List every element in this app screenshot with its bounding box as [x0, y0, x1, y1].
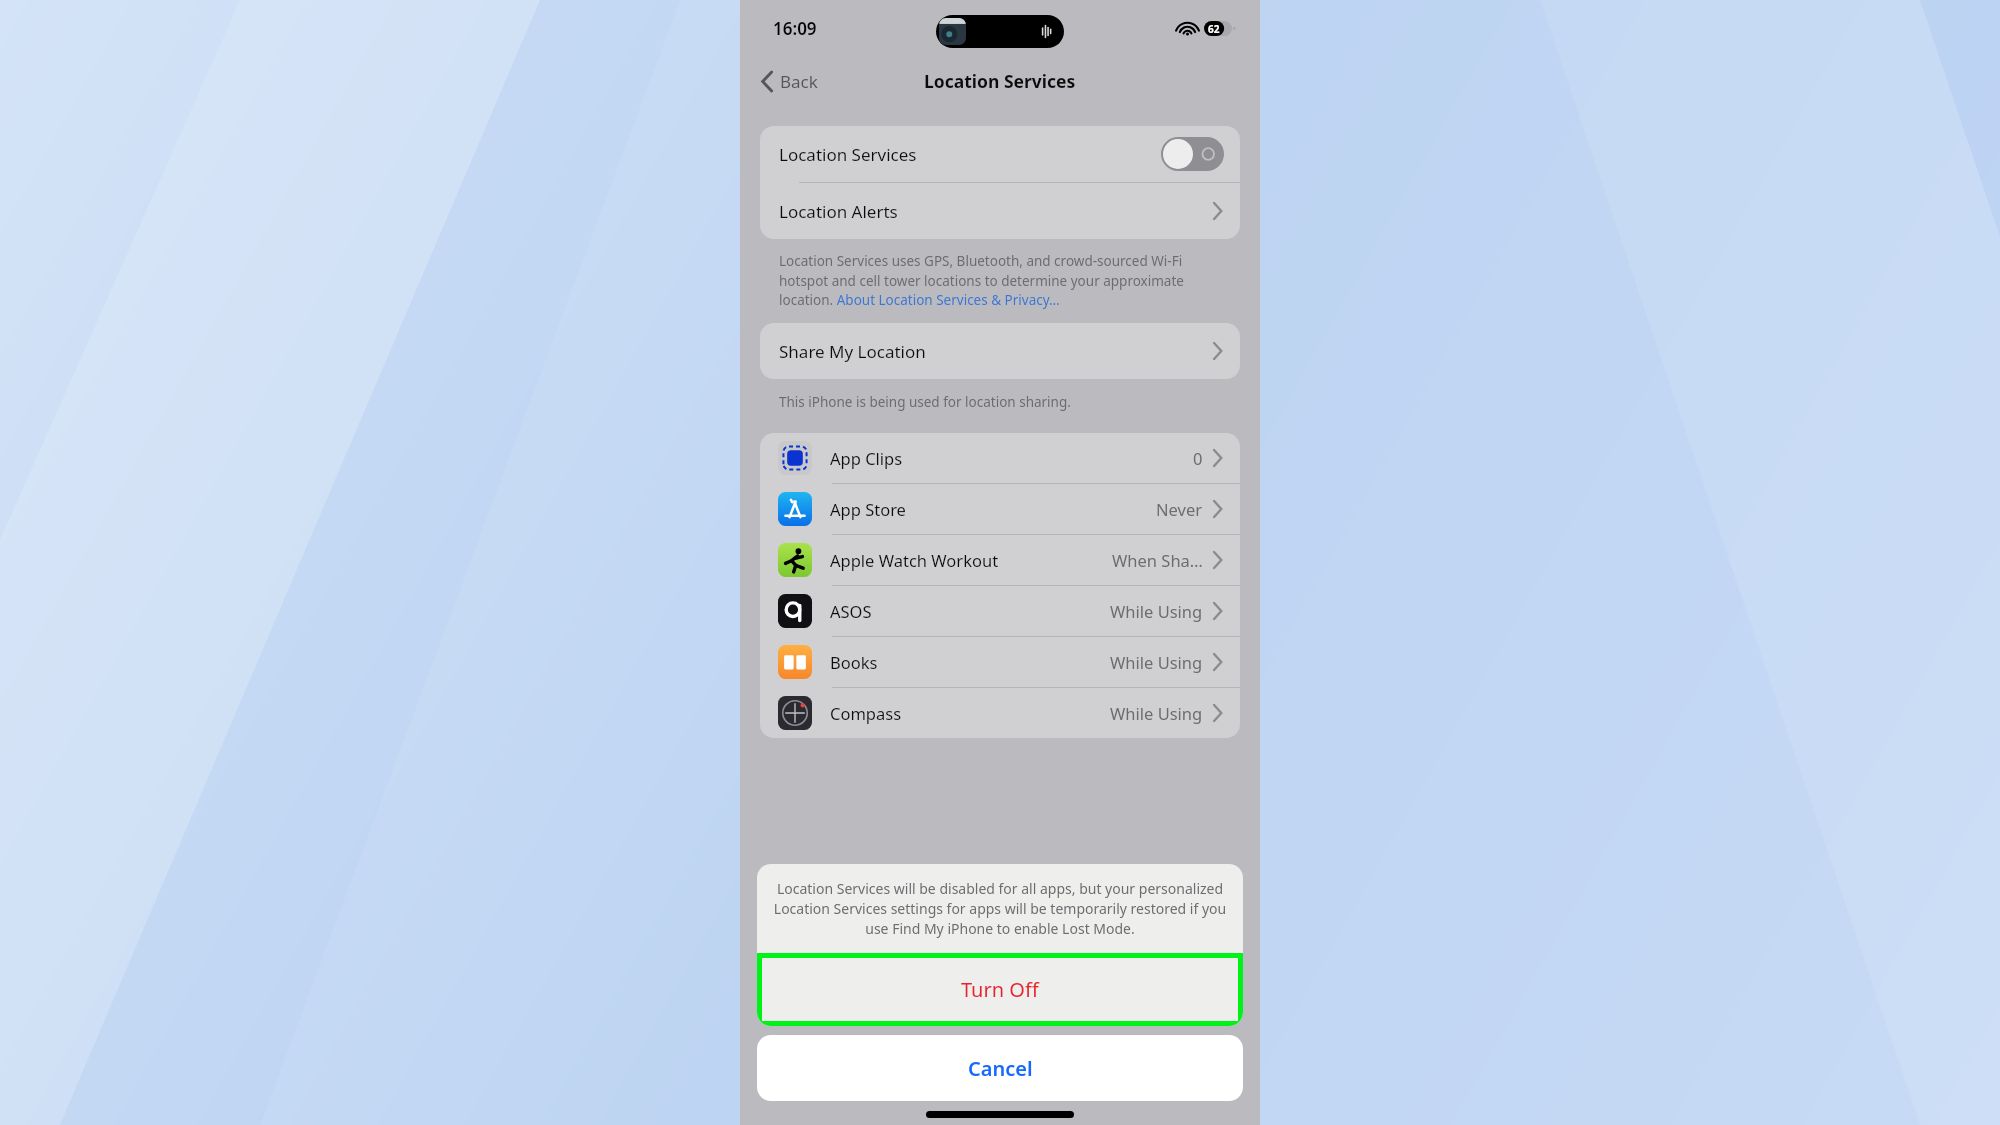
staticText: Location Services	[924, 69, 1076, 93]
button[interactable]: Compass	[760, 688, 1240, 738]
button[interactable]: App Clips	[760, 433, 1240, 483]
staticText: Compass	[830, 702, 902, 724]
staticText: 0	[1193, 447, 1203, 469]
button[interactable]: ASOS	[760, 586, 1240, 636]
staticText: Apple Watch Workout	[830, 549, 999, 571]
staticText: Cancel	[968, 1055, 1033, 1082]
staticText: 16:09	[773, 17, 817, 40]
staticText: Location Alerts	[779, 200, 898, 223]
staticText: While Using	[1110, 702, 1203, 724]
staticText: While Using	[1110, 600, 1203, 622]
button[interactable]: Location Services	[760, 126, 1240, 182]
button[interactable]: Cancel	[757, 1035, 1243, 1101]
staticText: 62	[1208, 22, 1220, 36]
staticText: ASOS	[830, 600, 872, 622]
button[interactable]: Books	[760, 637, 1240, 687]
button[interactable]: Share My Location	[760, 323, 1240, 379]
staticText: Back	[780, 70, 818, 93]
button[interactable]: App Store	[760, 484, 1240, 534]
staticText: Books	[830, 651, 878, 673]
staticText: App Store	[830, 498, 906, 520]
button[interactable]: Back	[740, 64, 828, 99]
staticText: While Using	[1110, 651, 1203, 673]
staticText: App Clips	[830, 447, 903, 469]
staticText: Never	[1156, 498, 1203, 520]
button[interactable]: Apple Watch Workout	[760, 535, 1240, 585]
staticText: Location Services	[779, 143, 917, 166]
staticText: Share My Location	[779, 340, 926, 363]
staticText: Location Services will be disabled for a…	[773, 879, 1227, 938]
button[interactable]: Location Alerts	[760, 183, 1240, 239]
staticText: Turn Off	[961, 976, 1039, 1003]
staticText: Location Services uses GPS, Bluetooth, a…	[779, 252, 1230, 309]
other: Location Services toggle	[1161, 137, 1224, 171]
staticText: When Sha…	[1112, 549, 1203, 571]
staticText: This iPhone is being used for location s…	[779, 393, 1071, 411]
button[interactable]: Turn Off	[762, 958, 1238, 1021]
